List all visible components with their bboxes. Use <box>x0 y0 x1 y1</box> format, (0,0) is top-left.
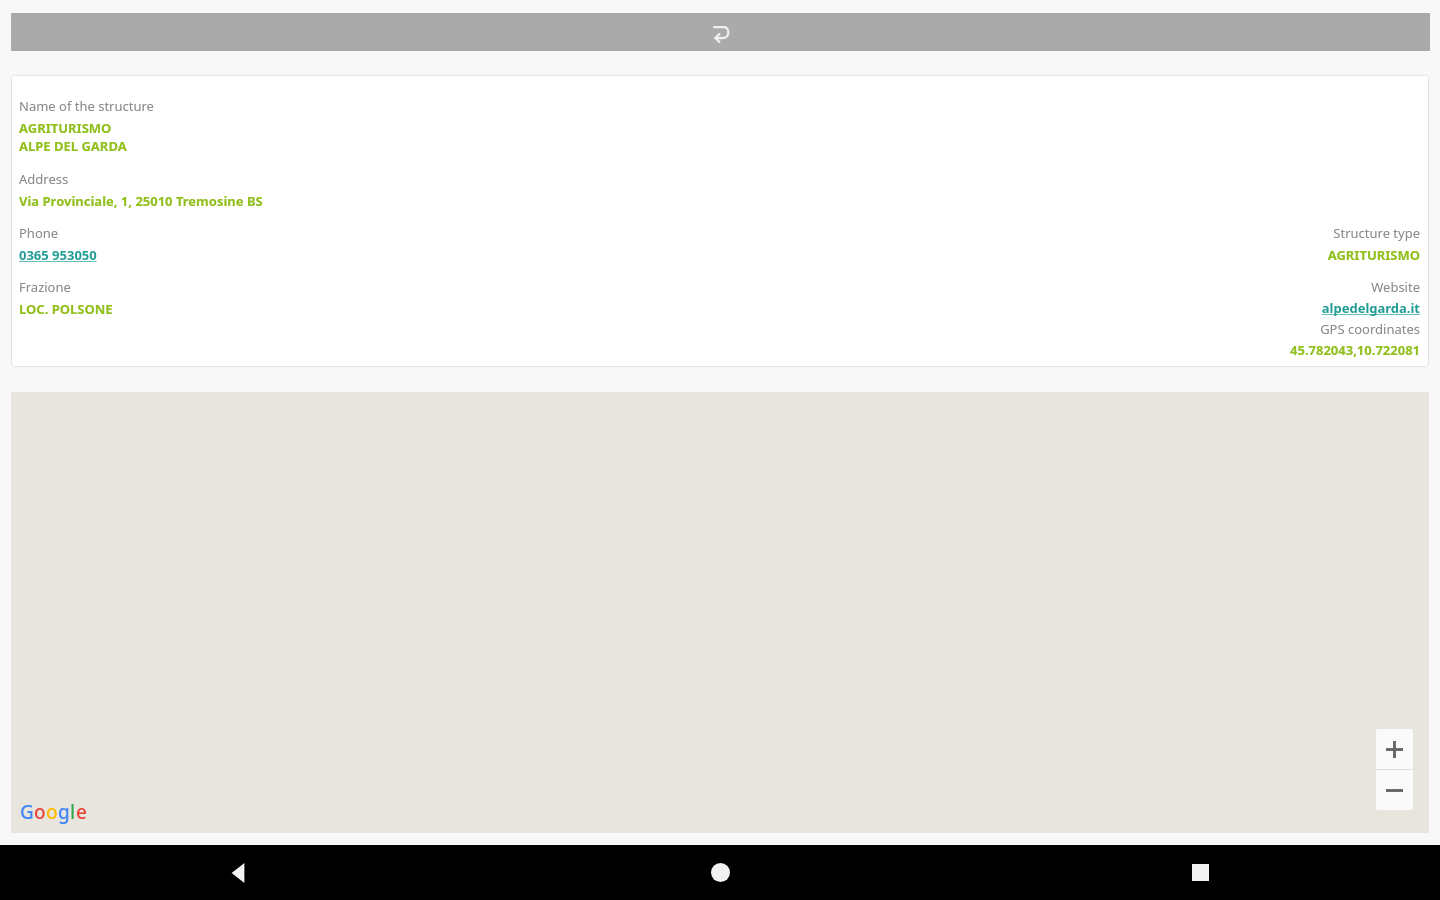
button[interactable]: Zoom out <box>1376 770 1413 810</box>
staticText: G <box>20 799 34 825</box>
staticText: 0365 953050 <box>19 246 97 264</box>
staticText: e <box>76 799 87 825</box>
button[interactable]: alpedelgarda.it <box>1321 299 1420 317</box>
staticText: o <box>34 799 46 825</box>
staticText: AGRITURISMO <box>19 119 112 137</box>
staticText: 45.782043,10.722081 <box>1290 341 1420 359</box>
staticText: Structure type <box>1333 224 1420 242</box>
staticText: o <box>46 799 58 825</box>
button[interactable]: Name of the structure <box>11 75 1429 367</box>
staticText: Frazione <box>19 278 71 296</box>
staticText: Via Provinciale, 1, 25010 Tremosine BS <box>19 192 263 210</box>
button[interactable]: Recent apps <box>960 845 1440 900</box>
staticText: Name of the structure <box>19 97 154 115</box>
button[interactable]: 0365 953050 <box>19 246 97 264</box>
staticText: g <box>58 799 70 825</box>
button[interactable]: Zoom in <box>1376 729 1413 769</box>
staticText: AGRITURISMO <box>1327 246 1420 264</box>
staticText: ALPE DEL GARDA <box>19 137 127 155</box>
staticText: Phone <box>19 224 59 242</box>
staticText: Address <box>19 170 69 188</box>
button[interactable]: Back <box>708 19 734 45</box>
button[interactable]: Home <box>480 845 960 900</box>
button[interactable]: Back <box>0 845 480 900</box>
button[interactable]: G <box>11 392 1429 833</box>
staticText: LOC. POLSONE <box>19 300 113 318</box>
staticText: GPS coordinates <box>1320 320 1420 338</box>
staticText: alpedelgarda.it <box>1321 299 1420 317</box>
staticText: Website <box>1371 278 1420 296</box>
staticText: l <box>70 799 76 825</box>
